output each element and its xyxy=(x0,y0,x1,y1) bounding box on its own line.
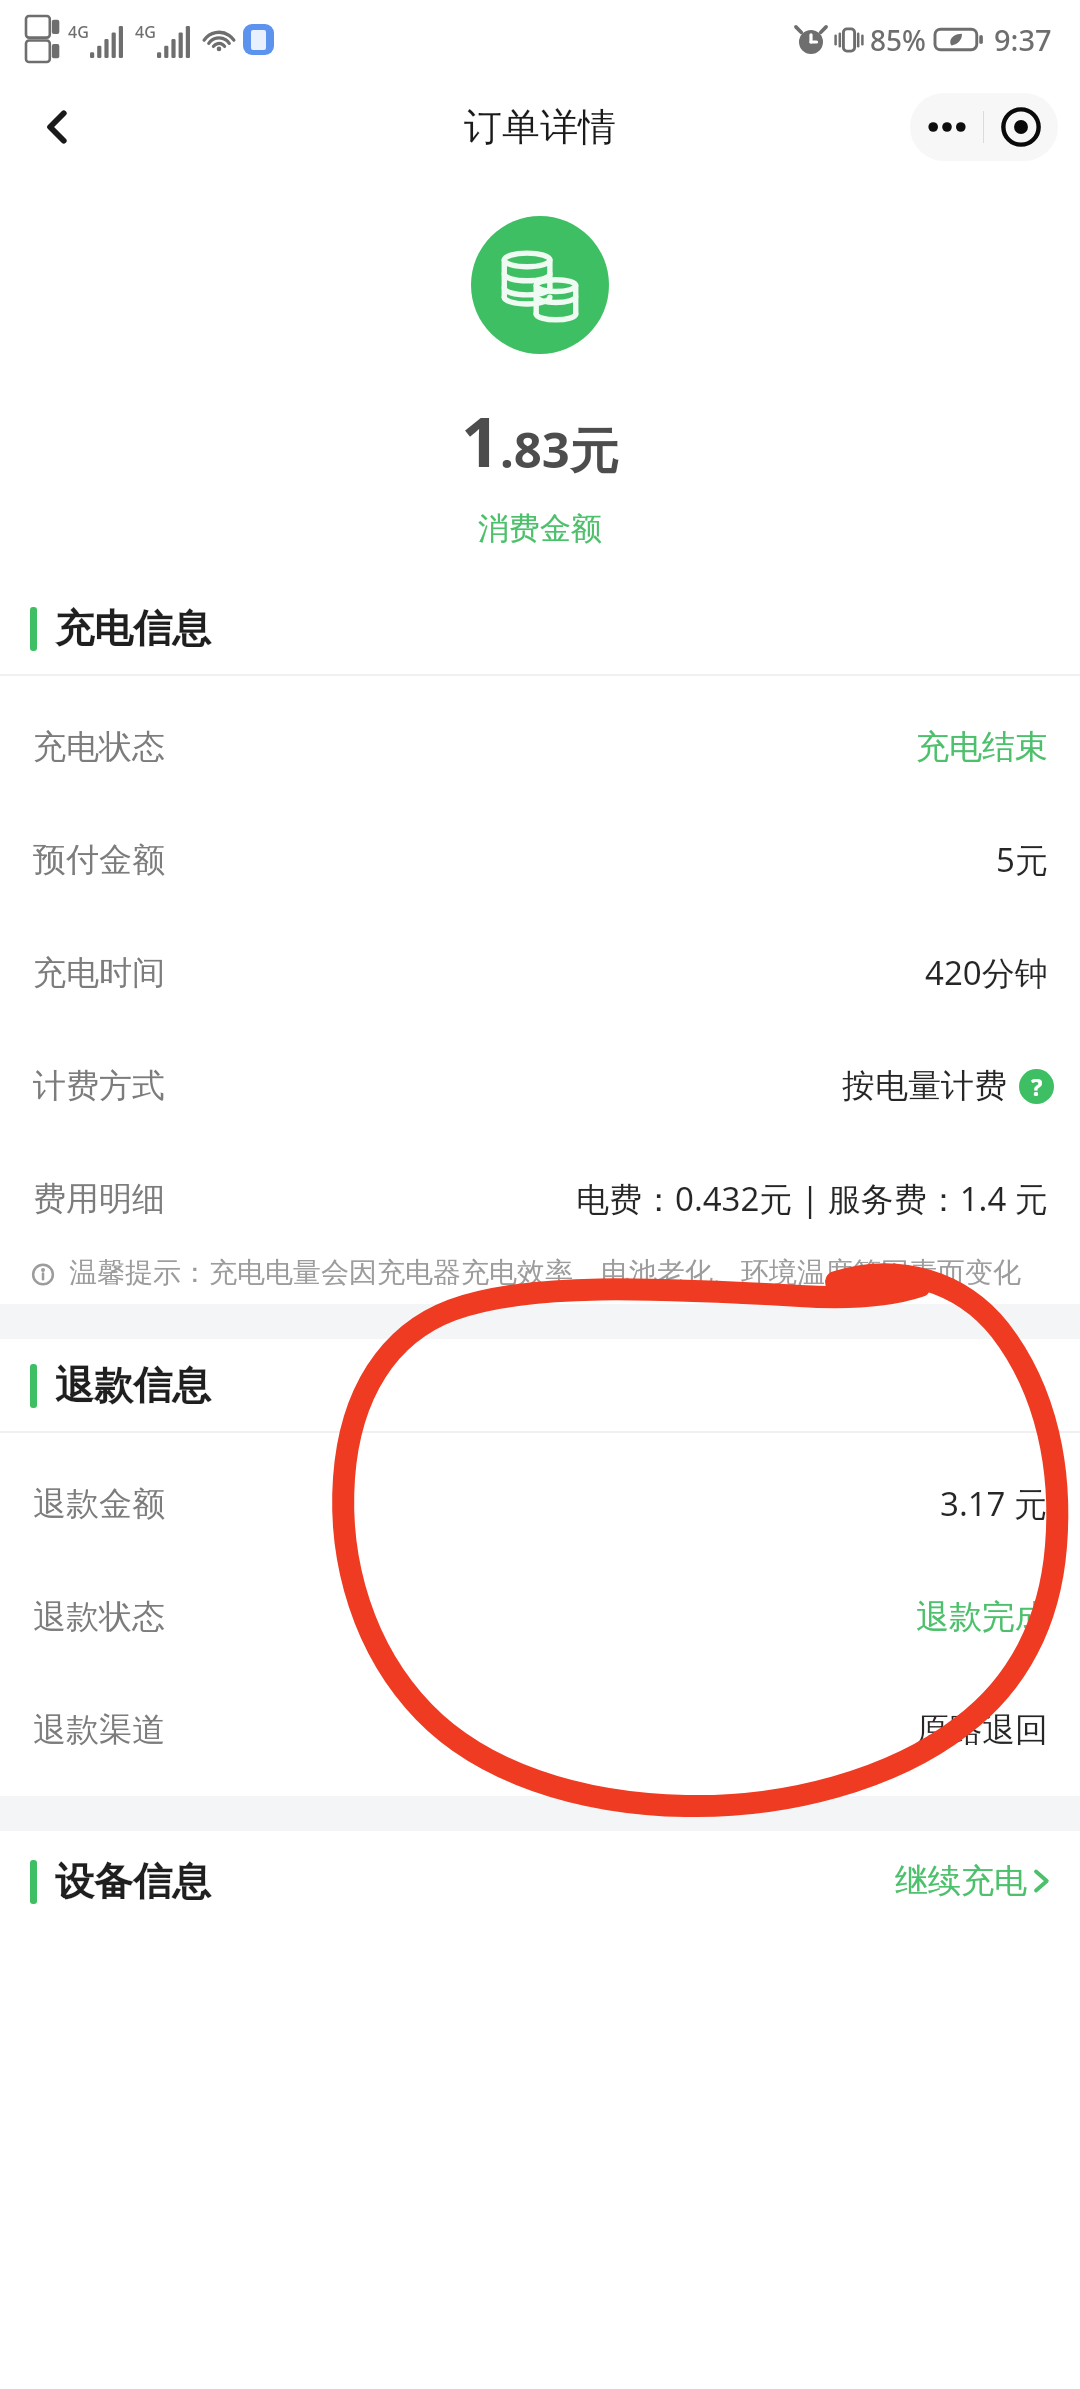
button[interactable]: 继续充电 xyxy=(887,1848,1060,1914)
staticText: .83元 xyxy=(500,416,619,483)
staticText: 退款信息 xyxy=(55,1361,211,1410)
button[interactable]: 更多 xyxy=(910,93,983,161)
staticText: 温馨提示：充电电量会因充电器充电效率、电池老化、环境温度等因素而变化 xyxy=(69,1255,1046,1290)
button[interactable]: 退款金额 xyxy=(0,1447,1080,1560)
staticText: 充电时间 xyxy=(33,952,165,994)
button[interactable]: 退款渠道 xyxy=(0,1673,1080,1786)
staticText: 费用明细 xyxy=(33,1178,165,1220)
staticText: 1 xyxy=(461,394,500,487)
button[interactable]: 充电时间 xyxy=(0,916,1080,1029)
button[interactable]: 计费方式说明 xyxy=(1019,1069,1054,1104)
staticText: 5元 xyxy=(996,837,1048,882)
staticText: 继续充电 xyxy=(895,1860,1027,1902)
staticText: 3.17 元 xyxy=(940,1481,1048,1526)
button[interactable]: 计费方式 xyxy=(0,1029,1080,1142)
staticText: 预付金额 xyxy=(33,839,165,881)
staticText: 退款状态 xyxy=(33,1596,165,1638)
staticText: 4G xyxy=(68,21,89,43)
staticText: 计费方式 xyxy=(33,1065,165,1107)
staticText: 9:37 xyxy=(994,20,1052,59)
staticText: 退款完成 xyxy=(916,1596,1048,1638)
staticText: 订单详情 xyxy=(464,103,616,151)
staticText: 原路退回 xyxy=(916,1709,1048,1751)
button[interactable]: 预付金额 xyxy=(0,803,1080,916)
staticText: ? xyxy=(1031,1070,1043,1103)
staticText: 按电量计费 xyxy=(842,1065,1007,1107)
staticText: 充电结束 xyxy=(916,726,1048,768)
staticText: 充电信息 xyxy=(55,604,211,653)
staticText: 消费金额 xyxy=(478,509,602,548)
button[interactable]: 退款状态 xyxy=(0,1560,1080,1673)
button[interactable]: 关闭 xyxy=(984,93,1058,161)
staticText: 85% xyxy=(870,21,926,59)
staticText: 4G xyxy=(135,21,156,43)
button[interactable]: 返回 xyxy=(20,89,96,165)
staticText: 退款金额 xyxy=(33,1483,165,1525)
staticText: 420分钟 xyxy=(925,950,1048,995)
staticText: 退款渠道 xyxy=(33,1709,165,1751)
staticText: 充电状态 xyxy=(33,726,165,768)
staticText: 电费：0.432元 | 服务费：1.4 元 xyxy=(576,1176,1048,1221)
staticText: 设备信息 xyxy=(55,1857,211,1906)
button[interactable]: 充电状态 xyxy=(0,690,1080,803)
button[interactable]: 费用明细 xyxy=(0,1142,1080,1255)
